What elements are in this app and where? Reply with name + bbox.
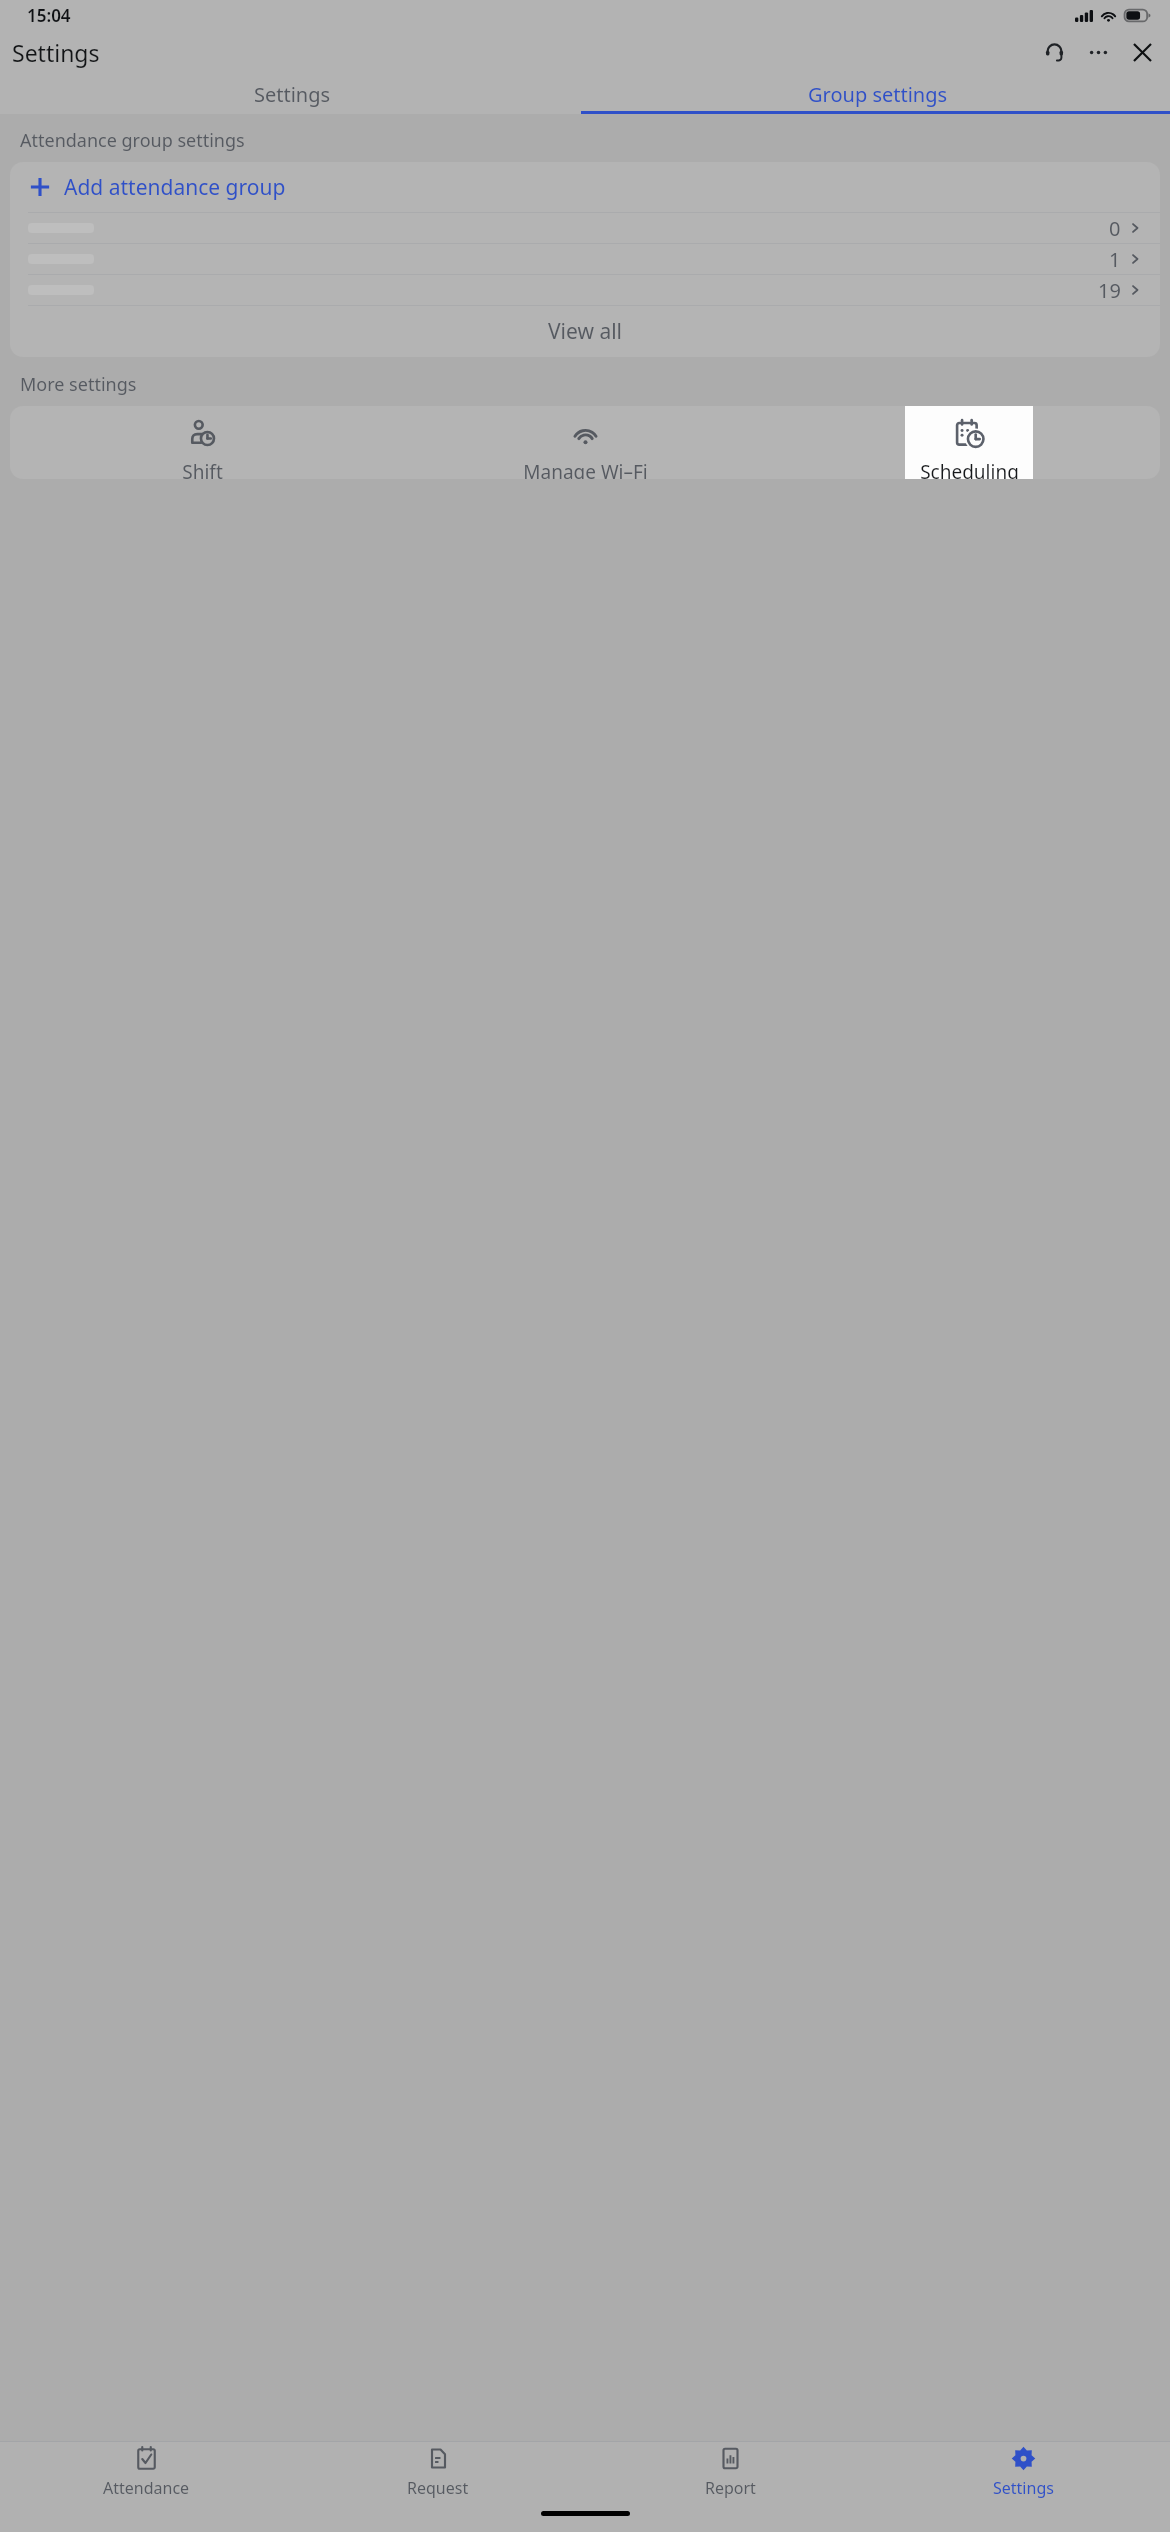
- staticText: 0: [1109, 215, 1121, 242]
- button[interactable]: Close: [1120, 30, 1164, 74]
- button[interactable]: Add attendance group: [10, 162, 1160, 212]
- button[interactable]: 1: [10, 244, 1160, 274]
- staticText: 19: [1098, 277, 1121, 304]
- button[interactable]: 19: [10, 275, 1160, 305]
- staticText: Report: [705, 2477, 756, 2499]
- staticText: 15:04: [27, 4, 71, 27]
- staticText: Attendance: [103, 2477, 190, 2499]
- button[interactable]: Support: [1032, 30, 1076, 74]
- button[interactable]: Attendance: [0, 2442, 292, 2502]
- staticText: View all: [548, 317, 623, 346]
- staticText: Settings: [993, 2477, 1054, 2499]
- staticText: Settings: [254, 81, 331, 108]
- staticText: Add attendance group: [64, 173, 286, 202]
- button[interactable]: Request: [292, 2442, 584, 2502]
- button[interactable]: Settings: [877, 2442, 1170, 2502]
- staticText: More settings: [20, 372, 137, 397]
- staticText: Group settings: [808, 81, 948, 108]
- staticText: Shift: [182, 459, 223, 479]
- button[interactable]: 0: [10, 213, 1160, 243]
- staticText: Scheduling: [920, 459, 1019, 479]
- staticText: Attendance group settings: [20, 128, 245, 153]
- staticText: Manage Wi–Fi: [523, 459, 648, 479]
- button[interactable]: Scheduling: [905, 406, 1033, 479]
- button[interactable]: More options: [1076, 30, 1120, 74]
- button[interactable]: Group settings: [585, 74, 1170, 114]
- staticText: 1: [1109, 246, 1121, 273]
- button[interactable]: Manage Wi–Fi: [519, 406, 652, 479]
- staticText: Request: [407, 2477, 469, 2499]
- button[interactable]: Report: [584, 2442, 877, 2502]
- button[interactable]: Settings: [0, 74, 585, 114]
- button[interactable]: Shift: [138, 406, 267, 479]
- staticText: Settings: [12, 37, 100, 68]
- button[interactable]: View all: [10, 306, 1160, 357]
